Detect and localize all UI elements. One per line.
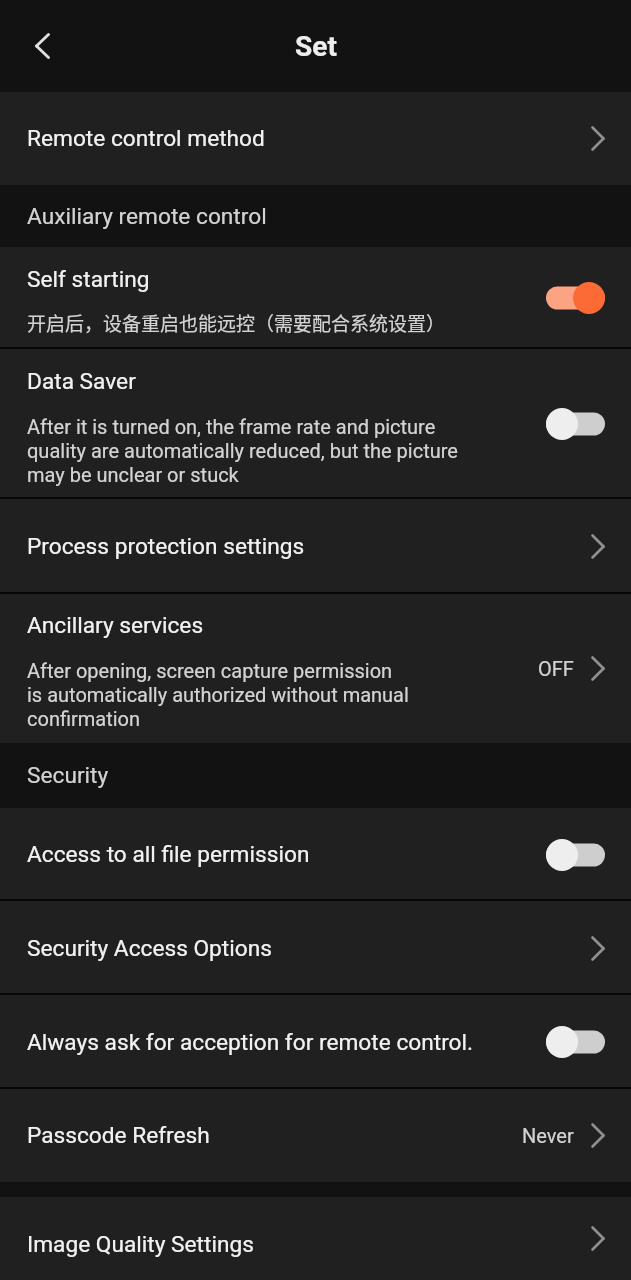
- staticText: Set: [295, 30, 337, 63]
- staticText: Auxiliary remote control: [27, 203, 267, 230]
- button[interactable]: Ancillary services: [0, 594, 631, 743]
- staticText: Security Access Options: [27, 935, 272, 962]
- staticText: Process protection settings: [27, 533, 305, 560]
- staticText: After it is turned on, the frame rate an…: [27, 415, 467, 487]
- staticText: OFF: [538, 657, 574, 680]
- button[interactable]: Remote control method: [0, 92, 631, 185]
- staticText: Always ask for acception for remote cont…: [27, 1029, 474, 1056]
- button[interactable]: Data Saver, off: [546, 407, 605, 441]
- staticText: Access to all file permission: [27, 841, 310, 868]
- button[interactable]: Image Quality Settings: [0, 1197, 631, 1280]
- button[interactable]: Passcode Refresh: [0, 1089, 631, 1182]
- button[interactable]: Process protection settings: [0, 499, 631, 594]
- button[interactable]: Access to all file permission, off: [546, 838, 605, 872]
- staticText: Self starting: [27, 266, 150, 293]
- button[interactable]: Back: [14, 18, 70, 74]
- button[interactable]: Always ask for acception for remote cont…: [0, 995, 631, 1089]
- staticText: Image Quality Settings: [27, 1231, 254, 1258]
- staticText: Remote control method: [27, 125, 265, 152]
- button[interactable]: Always ask for acception for remote cont…: [546, 1025, 605, 1059]
- button[interactable]: Access to all file permission: [0, 808, 631, 901]
- staticText: After opening, screen capture permission…: [27, 659, 409, 731]
- button[interactable]: Self starting, on: [546, 281, 605, 315]
- staticText: Passcode Refresh: [27, 1122, 210, 1149]
- staticText: Never: [522, 1124, 574, 1147]
- button[interactable]: Data Saver: [0, 349, 631, 499]
- staticText: Ancillary services: [27, 612, 204, 639]
- button[interactable]: Self starting: [0, 247, 631, 349]
- staticText: 开启后，设备重启也能远控（需要配合系统设置）: [27, 309, 446, 337]
- button[interactable]: Security Access Options: [0, 901, 631, 995]
- staticText: Data Saver: [27, 368, 136, 395]
- staticText: Security: [27, 762, 109, 789]
